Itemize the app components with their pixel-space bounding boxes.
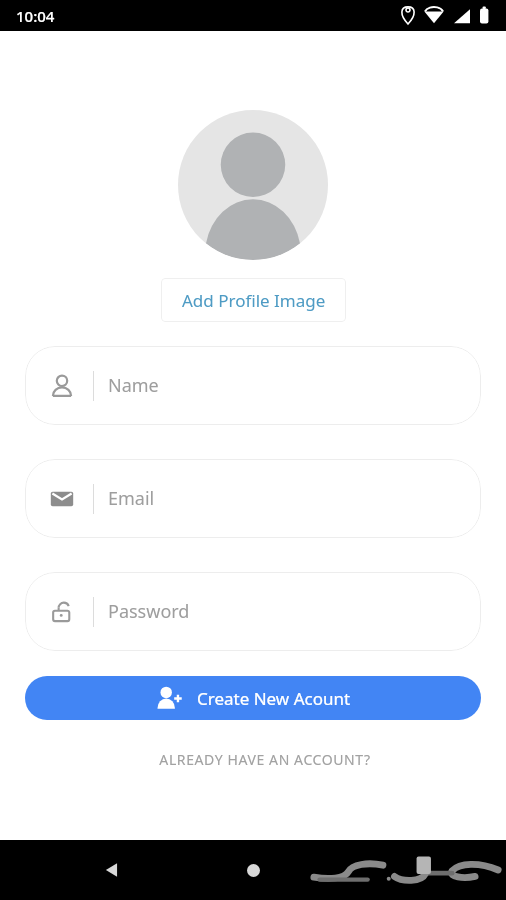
button[interactable]: Name: [25, 346, 481, 425]
button[interactable]: Back: [92, 850, 132, 890]
staticText: ALREADY HAVE AN ACCOUNT?: [159, 750, 371, 769]
staticText: Email: [108, 486, 155, 511]
staticText: Add Profile Image: [182, 289, 326, 312]
staticText: Create New Acount: [197, 687, 351, 710]
staticText: 10:04: [16, 6, 55, 26]
button[interactable]: Email: [25, 459, 481, 538]
staticText: Password: [108, 599, 190, 624]
staticText: Name: [108, 373, 159, 398]
button[interactable]: ALREADY HAVE AN ACCOUNT?: [0, 750, 506, 769]
button[interactable]: Profile picture: [178, 110, 328, 260]
button[interactable]: Add Profile Image: [161, 278, 346, 322]
button[interactable]: Create New Acount: [25, 676, 481, 720]
button[interactable]: Home: [233, 850, 273, 890]
button[interactable]: Password: [25, 572, 481, 651]
